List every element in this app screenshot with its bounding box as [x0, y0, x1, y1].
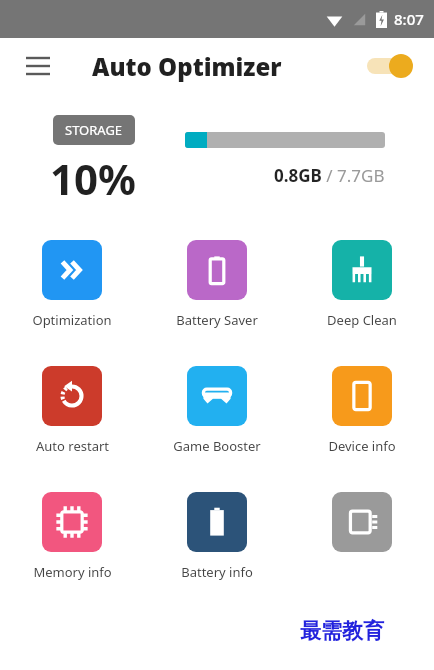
button[interactable]: STORAGE: [53, 115, 135, 145]
staticText: Optimization: [32, 311, 112, 329]
staticText: 8:07: [394, 9, 424, 29]
staticText: 0.8GB / 7.7GB: [274, 164, 385, 187]
other: Deep Clean: [332, 240, 392, 300]
other: [332, 492, 392, 552]
staticText: Auto restart: [36, 437, 109, 455]
button[interactable]: Device info: [289, 364, 434, 457]
staticText: Device info: [328, 437, 396, 455]
button[interactable]: Game Booster: [144, 364, 289, 457]
other: Optimization: [42, 240, 102, 300]
other: Device info: [332, 366, 392, 426]
button[interactable]: Toggle auto optimize: [358, 46, 420, 86]
button[interactable]: Battery Saver: [144, 238, 289, 331]
button[interactable]: Menu: [18, 46, 58, 86]
staticText: Deep Clean: [327, 311, 397, 329]
button[interactable]: Battery info: [144, 490, 289, 583]
button[interactable]: Optimization: [0, 238, 144, 331]
other: Battery Saver: [187, 240, 247, 300]
button[interactable]: Deep Clean: [289, 238, 434, 331]
staticText: Battery Saver: [176, 311, 258, 329]
button[interactable]: Auto restart: [0, 364, 144, 457]
staticText: Memory info: [33, 563, 112, 581]
other: Battery info: [187, 492, 247, 552]
staticText: Auto Optimizer: [92, 50, 282, 83]
staticText: STORAGE: [65, 121, 123, 139]
staticText: Battery info: [181, 563, 253, 581]
staticText: 最需教育: [300, 618, 384, 644]
button[interactable]: Memory info: [0, 490, 144, 583]
staticText: 10%: [50, 150, 136, 204]
button[interactable]: [289, 490, 434, 583]
other: Game Booster: [187, 366, 247, 426]
other: Auto restart: [42, 366, 102, 426]
staticText: Game Booster: [173, 437, 261, 455]
other: Memory info: [42, 492, 102, 552]
